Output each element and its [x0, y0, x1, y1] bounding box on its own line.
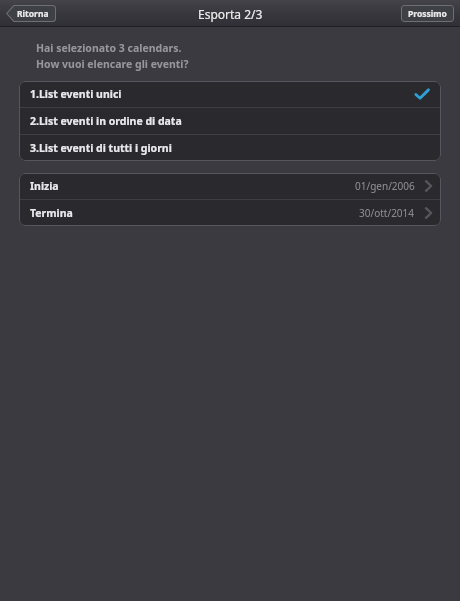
button[interactable]: Inizia [19, 173, 441, 199]
button[interactable]: Termina [19, 200, 441, 226]
button[interactable]: Prossimo [401, 5, 454, 22]
staticText: 2.List eventi in ordine di data [30, 114, 182, 128]
staticText: Inizia [30, 179, 59, 193]
staticText: 30/ott/2014 [359, 206, 415, 220]
staticText: 01/gen/2006 [355, 179, 415, 193]
button[interactable]: 2.List eventi in ordine di data [19, 108, 441, 134]
staticText: 3.List eventi di tutti i giorni [30, 141, 172, 155]
staticText: Esporta 2/3 [198, 6, 263, 22]
staticText: Hai selezionato 3 calendars. [36, 41, 182, 55]
other: Selected [415, 89, 429, 100]
button[interactable]: Ritorna [6, 5, 56, 22]
staticText: 1.List eventi unici [30, 87, 122, 101]
button[interactable]: 1.List eventi unici [19, 81, 441, 107]
button[interactable]: 3.List eventi di tutti i giorni [19, 135, 441, 161]
staticText: How vuoi elencare gli eventi? [36, 57, 189, 71]
staticText: Prossimo [408, 8, 447, 20]
staticText: Termina [30, 206, 73, 220]
staticText: Ritorna [17, 8, 49, 20]
